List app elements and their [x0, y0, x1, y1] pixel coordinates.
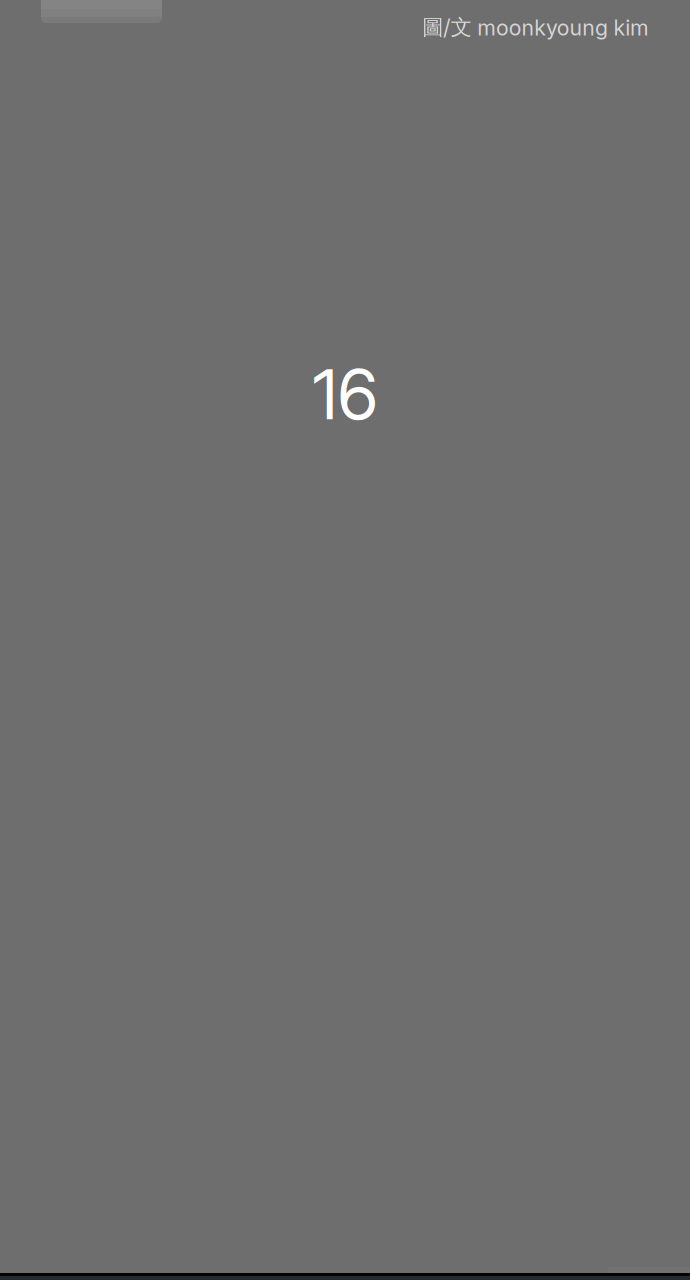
staticText: 圖/文 moonkyoung kim — [422, 14, 649, 41]
button[interactable]: Back — [41, 0, 162, 23]
staticText: 16 — [312, 352, 377, 436]
